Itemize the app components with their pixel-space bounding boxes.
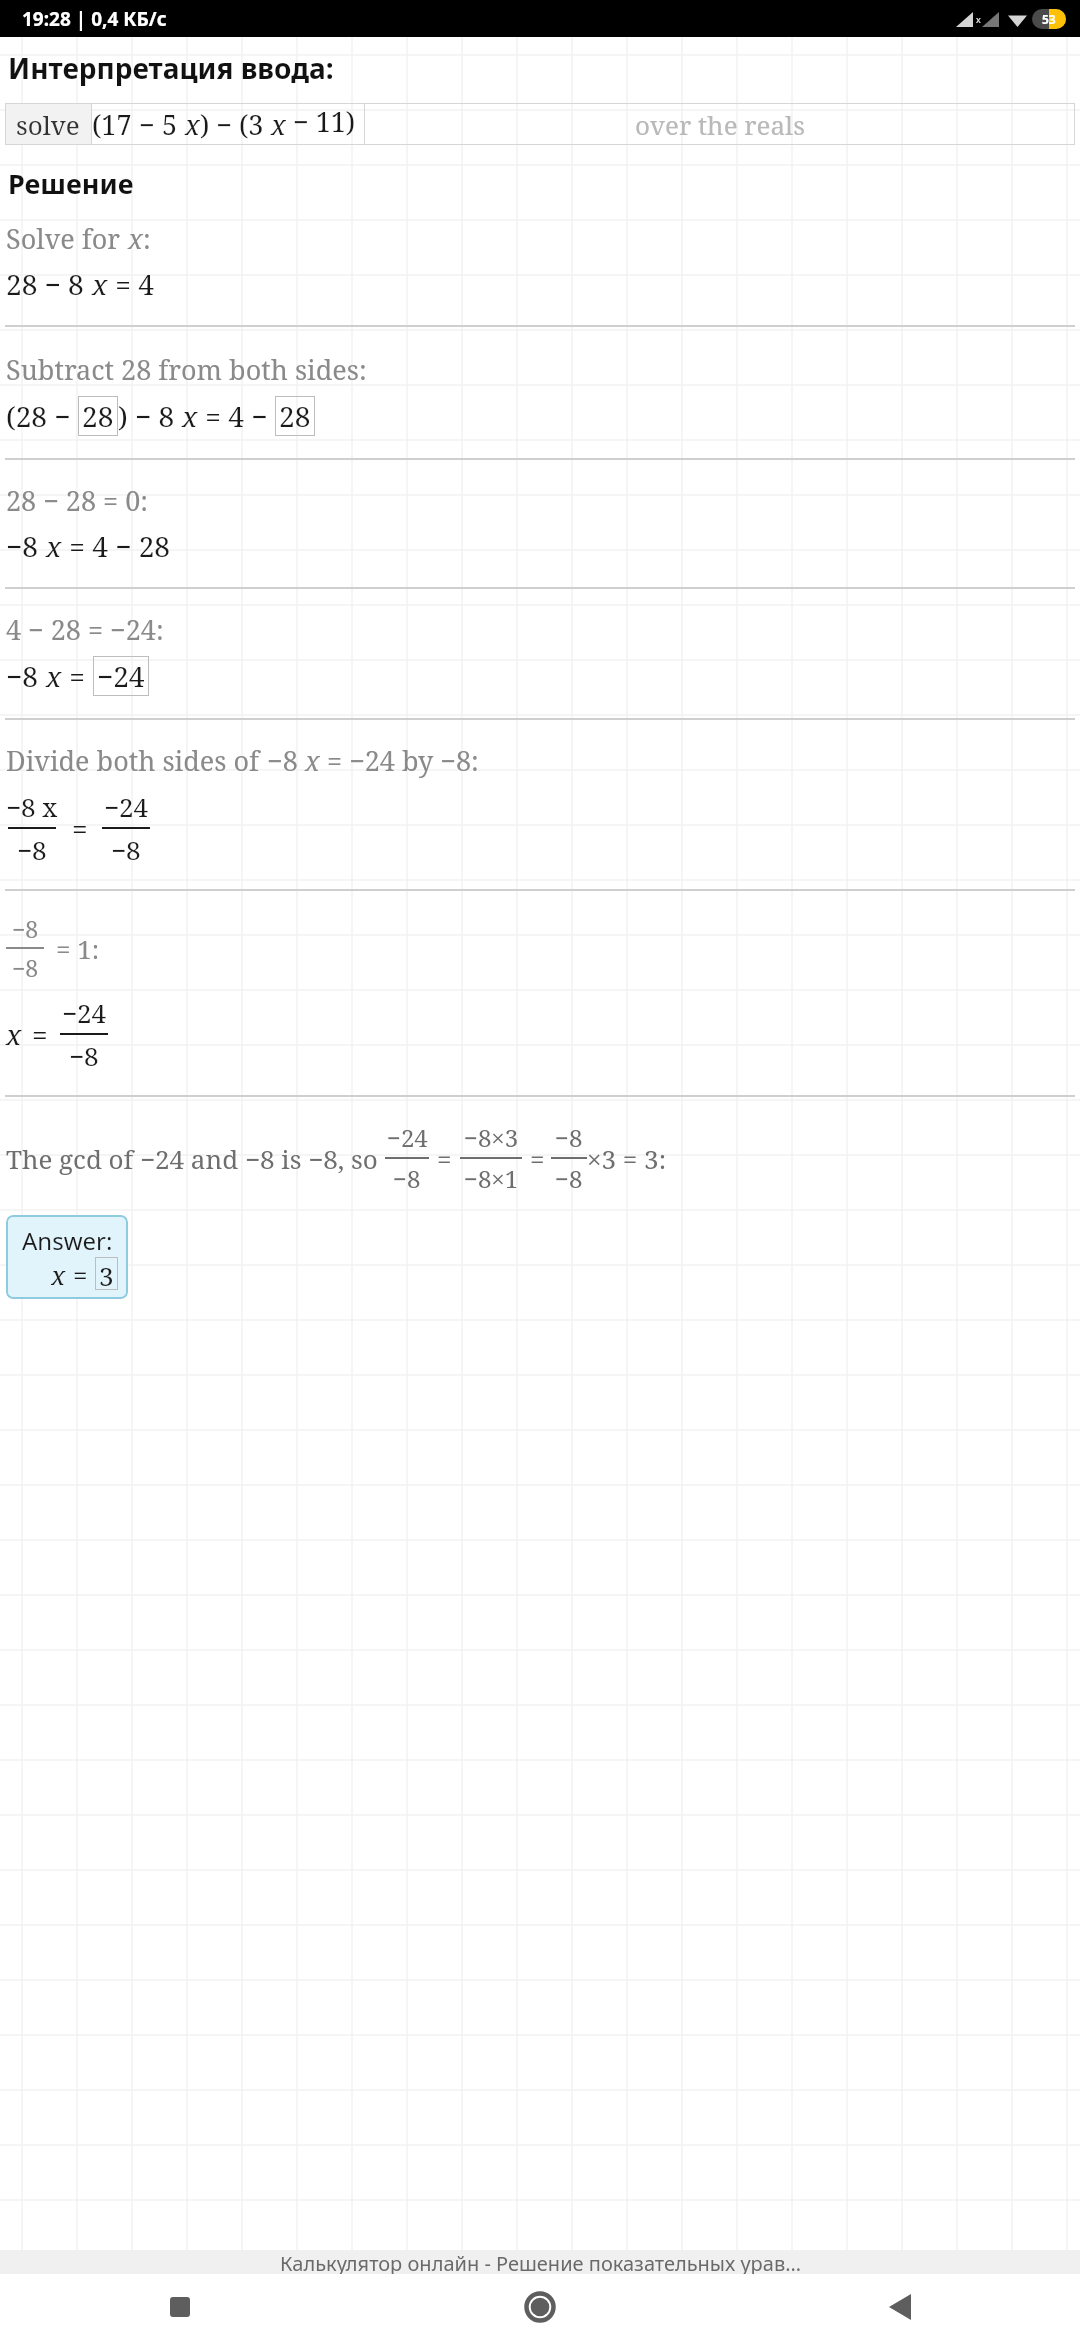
staticText: −8: [69, 1038, 99, 1073]
staticText: 28: [279, 397, 311, 435]
staticText: −24: [97, 657, 145, 695]
staticText: =: [437, 1141, 452, 1176]
staticText: −24: [62, 995, 107, 1030]
staticText: −8: [111, 832, 141, 867]
staticText: =: [32, 1015, 48, 1053]
staticText: Интерпретация ввода:: [8, 49, 334, 87]
staticText: = 4: [108, 265, 154, 303]
staticText: −8: [6, 527, 46, 565]
staticText: 28: [82, 397, 114, 435]
staticText: x: [271, 106, 286, 143]
button[interactable]: Back: [720, 2274, 1080, 2340]
staticText: −8: [17, 832, 47, 867]
staticText: x: [976, 13, 981, 25]
staticText: The gcd of −24 and −8 is −8, so: [6, 1141, 385, 1176]
button[interactable]: Калькулятор онлайн - Решение показательн…: [0, 2250, 1080, 2274]
staticText: −24: [104, 789, 149, 824]
staticText: 5: [162, 106, 185, 143]
staticText: ) − 8: [118, 397, 182, 435]
staticText: −8: [555, 1121, 583, 1154]
staticText: −8×3: [464, 1121, 519, 1154]
staticText: 4 − 28 = −24:: [6, 611, 164, 648]
staticText: x: [46, 657, 62, 695]
staticText: −8: [393, 1162, 421, 1195]
staticText: =: [62, 657, 93, 695]
staticText: 19:28 | 0,4 КБ/с: [22, 6, 167, 32]
staticText: x: [128, 220, 143, 257]
staticText: Subtract 28 from both sides:: [6, 351, 367, 388]
staticText: ) − (3: [200, 106, 271, 143]
staticText: ×3 = 3:: [587, 1141, 667, 1176]
staticText: x: [185, 106, 200, 143]
staticText: x: [46, 527, 62, 565]
staticText: 28 − 28 = 0:: [6, 482, 148, 519]
staticText: −8: [267, 742, 305, 779]
staticText: −8: [12, 952, 39, 983]
staticText: −8 x: [6, 789, 58, 824]
staticText: = 1:: [56, 931, 100, 966]
staticText: =: [73, 1257, 88, 1290]
staticText: solve: [16, 107, 80, 142]
staticText: 3: [99, 1258, 114, 1289]
staticText: =: [72, 809, 88, 847]
staticText: Калькулятор онлайн - Решение показательн…: [280, 2250, 801, 2274]
staticText: =: [530, 1141, 545, 1176]
button[interactable]: Home: [360, 2274, 720, 2340]
staticText: Answer:: [22, 1224, 113, 1257]
staticText: = −24 by −8:: [320, 742, 479, 779]
button[interactable]: Recent apps: [0, 2274, 360, 2340]
staticText: −: [139, 106, 162, 143]
staticText: x: [51, 1257, 66, 1290]
staticText: :: [143, 220, 151, 257]
staticText: over the reals: [635, 107, 805, 142]
staticText: − 11) = 4: [286, 103, 364, 145]
staticText: x: [182, 397, 198, 435]
staticText: −24: [387, 1121, 428, 1154]
staticText: −8: [555, 1162, 583, 1195]
button[interactable]: solve: [5, 103, 1075, 145]
staticText: 28 − 8: [6, 265, 92, 303]
staticText: −8: [12, 913, 39, 944]
staticText: −8×1: [464, 1162, 519, 1195]
staticText: (28 −: [6, 397, 78, 435]
staticText: 53: [1042, 11, 1056, 27]
staticText: Divide both sides of: [6, 742, 267, 779]
staticText: (17: [92, 106, 139, 143]
staticText: Решение: [8, 165, 134, 202]
staticText: Solve for: [6, 220, 128, 257]
staticText: x: [305, 742, 320, 779]
staticText: = 4 −: [198, 397, 275, 435]
staticText: −8: [6, 657, 46, 695]
staticText: x: [92, 265, 108, 303]
button[interactable]: Answer:: [6, 1215, 128, 1299]
staticText: = 4 − 28: [62, 527, 170, 565]
staticText: x: [6, 1015, 22, 1053]
